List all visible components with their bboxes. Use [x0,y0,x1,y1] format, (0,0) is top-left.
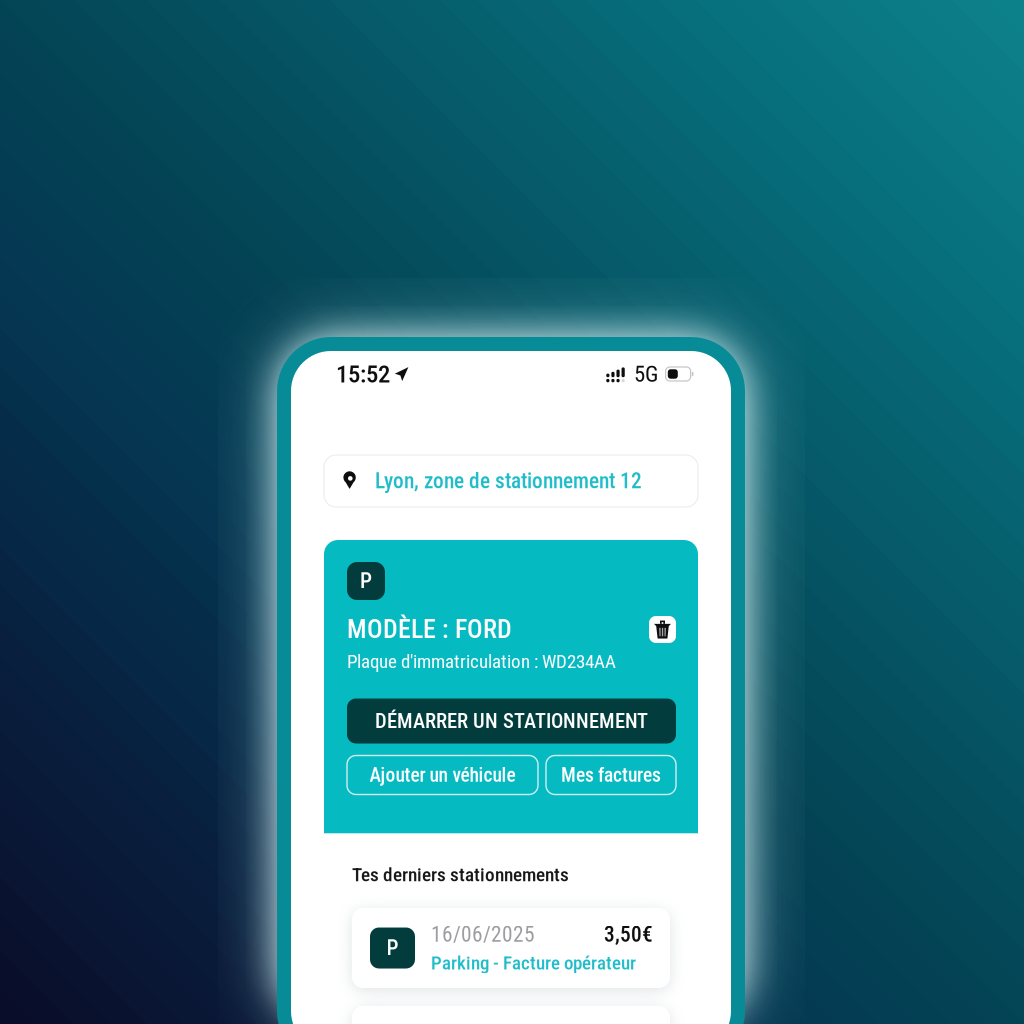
staticText: Mes factures [561,764,661,786]
button[interactable]: Mes factures [546,755,676,794]
staticText: MODÈLE : FORD [347,614,512,644]
staticText: 15:52 [336,359,390,388]
staticText: Tes derniers stationnements [352,863,569,886]
staticText: 16/06/2025 [431,922,535,947]
staticText: Ajouter un véhicule [369,764,515,786]
staticText: Parking - Facture opérateur [431,952,636,974]
staticText: 5G [634,361,658,387]
staticText: 3,50€ [604,922,653,947]
button[interactable]: P [352,908,670,988]
button[interactable]: Lyon, zone de stationnement 12 [324,455,698,507]
staticText: Lyon, zone de stationnement 12 [375,468,642,493]
button[interactable]: Supprimer le véhicule [649,616,676,643]
button[interactable]: DÉMARRER UN STATIONNEMENT [347,698,676,743]
staticText: P [386,935,398,960]
button[interactable]: Ajouter un véhicule [347,755,538,794]
staticText: DÉMARRER UN STATIONNEMENT [375,709,648,733]
staticText: P [360,568,372,593]
staticText: Plaque d'immatriculation : WD234AA [347,650,616,672]
